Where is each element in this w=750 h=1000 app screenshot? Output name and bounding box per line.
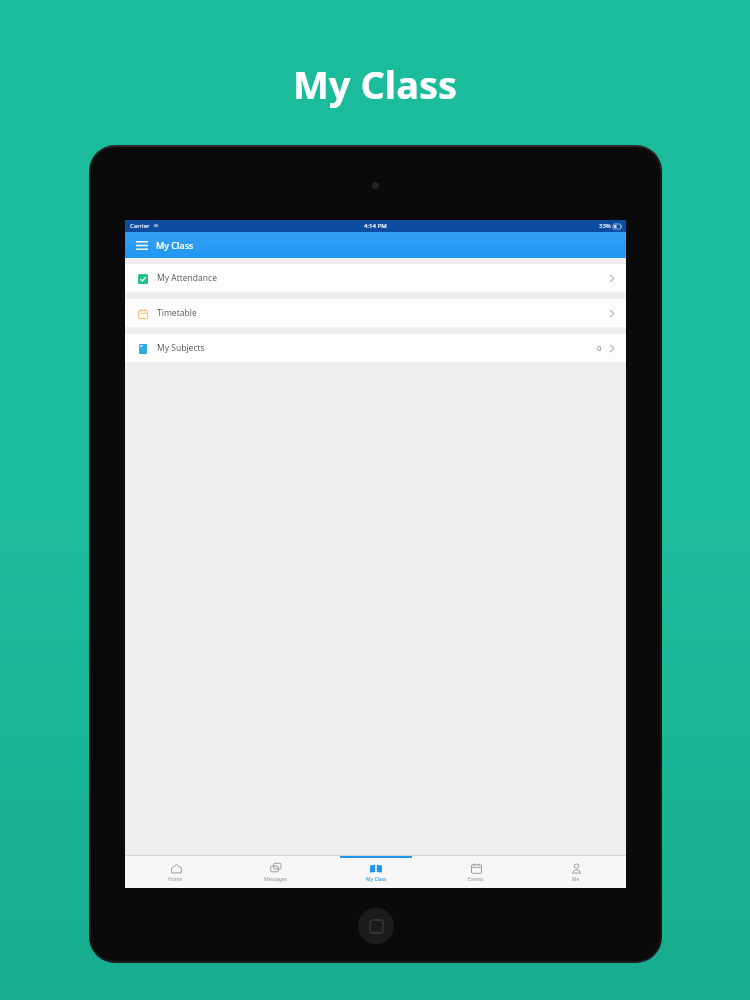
staticText: My Class	[293, 58, 458, 110]
staticText: Carrier	[130, 222, 150, 230]
staticText: Home	[168, 876, 183, 883]
button[interactable]: My Attendance	[125, 264, 626, 292]
button[interactable]: Events	[426, 856, 526, 888]
staticText: Messages	[264, 876, 288, 883]
staticText: My Class	[366, 876, 387, 883]
button[interactable]: Open navigation menu	[134, 237, 150, 253]
button[interactable]: My Subjects	[125, 334, 626, 362]
button[interactable]: Home	[125, 856, 226, 888]
button[interactable]: Timetable	[125, 299, 626, 327]
staticText: My Attendance	[157, 272, 217, 284]
staticText: Me	[572, 876, 580, 883]
button[interactable]: Messages	[226, 856, 326, 888]
staticText: 33%	[599, 222, 611, 230]
staticText: 4:14 PM	[364, 222, 387, 230]
staticText: Timetable	[157, 307, 197, 319]
staticText: My Class	[156, 239, 194, 251]
staticText: 0	[597, 343, 602, 353]
staticText: Events	[468, 876, 484, 883]
staticText: My Subjects	[157, 342, 205, 354]
button[interactable]: My Class	[326, 856, 426, 888]
button[interactable]: Me	[526, 856, 626, 888]
